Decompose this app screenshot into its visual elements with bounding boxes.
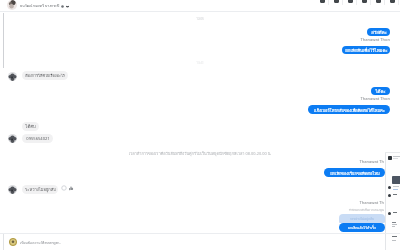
- button[interactable]: ได้คะ: [371, 87, 390, 95]
- staticText: Thanawat Th: [0, 200, 384, 206]
- button[interactable]: ได้คับ: [22, 122, 39, 131]
- staticText: กำลังตอบกลับข้อความของคุณ: [0, 208, 384, 212]
- staticText: เขียนข้อความ Messenger...: [20, 240, 62, 245]
- staticText: ระหว่างไม่อยู่กลับ: [350, 216, 375, 221]
- button[interactable]: ธนวัฒน์ ทองทวี บางกระปิ: [7, 1, 69, 11]
- button[interactable]: Pin conversation: [343, 0, 357, 11]
- button[interactable]: ยกเลิกแล้วไว้สำเร็จ: [339, 223, 385, 232]
- staticText: สวัสดีคะ: [371, 29, 387, 36]
- button[interactable]: Close: [385, 0, 399, 11]
- button[interactable]: เขียนข้อความ Messenger...: [0, 234, 400, 250]
- staticText: Thanawat Th: [0, 159, 384, 165]
- staticText: Thanawat Thon: [0, 96, 390, 102]
- staticText: ยกเลิกแล้วไว้สำเร็จ: [348, 225, 377, 230]
- staticText: ระหว่างไม่อยู่กลับ: [25, 186, 56, 193]
- button[interactable]: 0955654021: [22, 134, 53, 143]
- button[interactable]: Search: [357, 0, 371, 11]
- button[interactable]: ระหว่างไม่อยู่กลับ: [22, 185, 58, 194]
- staticText: ยกเลิกสินเชื่อไว้ไหมคะ: [345, 47, 388, 54]
- staticText: ยกเลิกของเรียกขอติดต่อไหม: [330, 170, 380, 176]
- staticText: ธนวัฒน์ ทองทวี บางกระปิ: [20, 3, 60, 9]
- button[interactable]: ยกเลิกสินเชื่อไว้ไหมคะ: [342, 46, 390, 54]
- button[interactable]: Video call: [315, 0, 329, 11]
- staticText: เวลาทำการของเราคือวันจันทร์ถึงวันศุกร์ไม…: [0, 151, 400, 157]
- button[interactable]: Minimize: [371, 0, 385, 11]
- staticText: ได้คับ: [25, 123, 36, 130]
- button[interactable]: Voice call: [329, 0, 343, 11]
- button[interactable]: ระหว่างไม่อยู่กลับ: [339, 214, 385, 223]
- staticText: แจ้งเบอร์โทรกลับของเพื่อติดต่อได้ไหมคะ: [314, 107, 385, 113]
- button[interactable]: Side panel: [385, 152, 400, 250]
- button[interactable]: Like: [68, 185, 74, 191]
- staticText: 0955654021: [26, 136, 50, 142]
- button[interactable]: ยกเลิกของเรียกขอติดต่อไหม: [324, 168, 385, 177]
- button[interactable]: สวัสดีคะ: [367, 28, 390, 36]
- staticText: Thanawat Thon: [0, 37, 390, 43]
- button[interactable]: ต้องการให้ช่วยเรื่องอะไร: [22, 71, 68, 80]
- staticText: ได้คะ: [375, 88, 386, 95]
- staticText: 12:05: [0, 17, 400, 21]
- button[interactable]: แจ้งเบอร์โทรกลับของเพื่อติดต่อได้ไหมคะ: [308, 105, 390, 114]
- staticText: ต้องการให้ช่วยเรื่องอะไร: [25, 73, 65, 79]
- button[interactable]: Add reaction: [61, 185, 67, 191]
